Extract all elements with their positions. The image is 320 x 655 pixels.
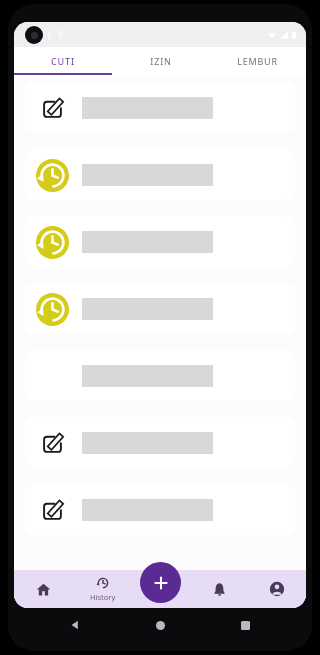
button[interactable]: LEMBUR	[209, 47, 306, 75]
button[interactable]	[25, 484, 295, 535]
button[interactable]	[25, 216, 295, 267]
staticText: CUTI	[51, 55, 75, 67]
button[interactable]: Add	[140, 562, 181, 603]
button[interactable]: Home	[14, 570, 73, 608]
staticText: LEMBUR	[237, 55, 278, 67]
button[interactable]: Recent apps	[234, 614, 256, 636]
button[interactable]: CUTI	[14, 47, 112, 75]
button[interactable]: Notifications	[190, 570, 248, 608]
button[interactable]: IZIN	[112, 47, 209, 75]
button[interactable]: Profile	[248, 570, 306, 608]
button[interactable]	[25, 149, 295, 200]
staticText: History	[90, 592, 116, 602]
button[interactable]: Home	[149, 614, 171, 636]
button[interactable]	[25, 283, 295, 334]
button[interactable]	[25, 350, 295, 401]
button[interactable]	[25, 417, 295, 468]
button[interactable]: Back	[64, 614, 86, 636]
staticText: IZIN	[150, 55, 172, 67]
button[interactable]: History	[73, 570, 132, 608]
button[interactable]	[25, 82, 295, 133]
